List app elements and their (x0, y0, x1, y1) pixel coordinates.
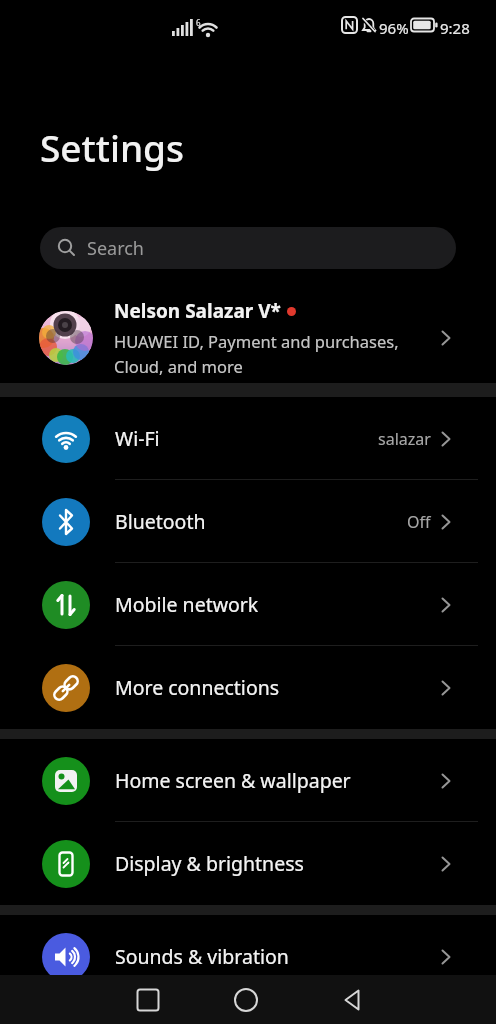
staticText: Mobile network (115, 591, 259, 618)
staticText: Display & brightness (115, 850, 304, 877)
button[interactable]: Wi-Fi (0, 397, 496, 480)
staticText: Settings (40, 122, 185, 172)
staticText: salazar (378, 428, 431, 450)
button[interactable]: More connections (0, 646, 496, 729)
staticText: More connections (115, 674, 280, 701)
button[interactable]: Search (40, 227, 456, 269)
staticText: Wi-Fi (115, 425, 160, 452)
staticText: Nelson Salazar V* (114, 298, 281, 324)
button[interactable] (234, 988, 258, 1012)
button[interactable] (341, 988, 365, 1012)
staticText: Bluetooth (115, 508, 206, 535)
staticText: Off (407, 511, 431, 533)
button[interactable]: Display & brightness (0, 822, 496, 905)
button[interactable]: Nelson Salazar V* (0, 292, 496, 383)
staticText: 6 (196, 17, 201, 28)
button[interactable] (136, 988, 160, 1012)
button[interactable]: Home screen & wallpaper (0, 739, 496, 822)
staticText: Sounds & vibration (115, 943, 289, 970)
button[interactable]: Mobile network (0, 563, 496, 646)
button[interactable]: Bluetooth (0, 480, 496, 563)
button[interactable]: Sounds & vibration (0, 915, 496, 998)
staticText: 96% (379, 18, 409, 38)
staticText: 9:28 (440, 18, 470, 38)
staticText: HUAWEI ID, Payment and purchases, Cloud,… (114, 330, 399, 377)
staticText: Search (87, 236, 144, 261)
staticText: Home screen & wallpaper (115, 767, 351, 794)
